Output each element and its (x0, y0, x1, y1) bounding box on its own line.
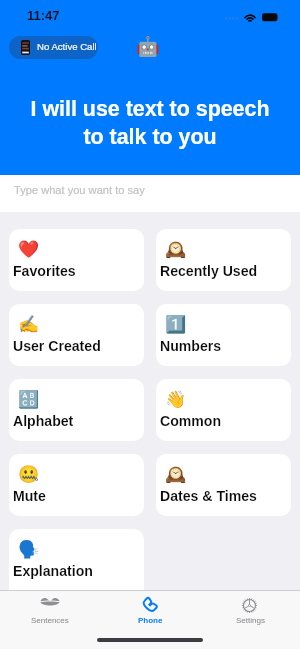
button[interactable]: 1️⃣ (156, 304, 291, 366)
button[interactable]: 👋 (156, 379, 291, 441)
other: Settings (242, 598, 258, 613)
staticText: 🤖 (136, 35, 160, 57)
other: Phone (142, 596, 159, 613)
button[interactable]: ❤️ (9, 229, 144, 291)
staticText: ✍️ (18, 314, 40, 334)
button[interactable]: Type what you want to say (0, 175, 300, 212)
staticText: Mute (13, 488, 46, 504)
staticText: 🔠 (18, 389, 40, 409)
button[interactable]: ✍️ (9, 304, 144, 366)
button[interactable]: 🔠 (9, 379, 144, 441)
staticText: Common (160, 413, 222, 429)
staticText: Dates & Times (160, 488, 257, 504)
staticText: User Created (13, 338, 101, 354)
staticText: 🗣️ (18, 539, 40, 559)
button[interactable]: 🕰️ (156, 454, 291, 516)
button[interactable]: Settings (200, 591, 300, 625)
button[interactable]: 🤐 (9, 454, 144, 516)
button[interactable]: 🕰️ (156, 229, 291, 291)
staticText: Favorites (13, 263, 76, 279)
staticText: ❤️ (18, 239, 40, 259)
staticText: No Active Call (37, 41, 98, 52)
button[interactable]: No Active Call (9, 36, 98, 59)
staticText: I will use text to speech to talk to you (25, 97, 275, 148)
staticText: 👋 (165, 389, 187, 409)
staticText: 🤐 (18, 464, 40, 484)
button[interactable]: Sentences (0, 591, 100, 625)
staticText: 🕰️ (165, 239, 187, 259)
staticText: Phone (138, 616, 163, 625)
staticText: 1️⃣ (165, 314, 187, 334)
staticText: Settings (236, 616, 265, 625)
staticText: Recently Used (160, 263, 258, 279)
staticText: 🕰️ (165, 464, 187, 484)
staticText: Numbers (160, 338, 222, 354)
staticText: 11:47 (27, 8, 60, 23)
button[interactable]: 🗣️ (9, 529, 144, 590)
staticText: Type what you want to say (14, 184, 145, 196)
button[interactable]: Phone (100, 591, 200, 625)
staticText: Sentences (31, 616, 69, 625)
staticText: Alphabet (13, 413, 74, 429)
staticText: Explanation (13, 563, 93, 579)
other: Sentences (40, 596, 60, 610)
